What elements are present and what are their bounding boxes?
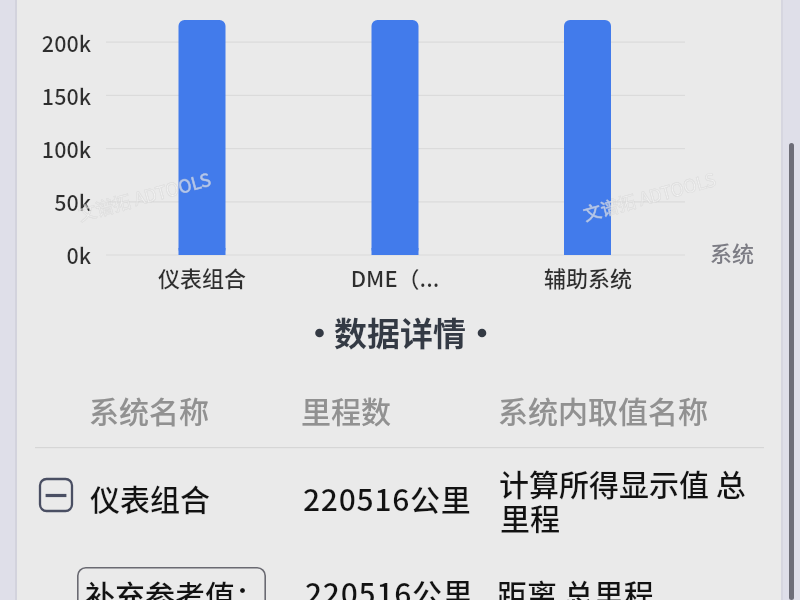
staticText: 100k	[41, 133, 91, 164]
staticText: 200k	[41, 27, 91, 58]
staticText: 距离 总里程	[497, 571, 654, 600]
staticText: 辅助系统	[488, 261, 688, 293]
staticText: 仪表组合	[102, 261, 302, 293]
staticText: 文谱拓 ADTOOLS	[580, 165, 719, 226]
staticText: 系统内取值名称	[498, 388, 708, 431]
staticText: 系统名称	[89, 388, 209, 431]
staticText: 计算所得显示值 总	[499, 461, 746, 504]
staticText: 文谱拓 ADTOOLS	[75, 165, 214, 226]
staticText: 文谱拓 ADTOOLS	[580, 165, 719, 226]
button[interactable]	[17, 448, 781, 552]
staticText: 补充参考值：	[85, 572, 265, 600]
button[interactable]	[77, 567, 266, 600]
staticText: 里程	[500, 495, 560, 538]
button[interactable]: Collapse 仪表组合	[39, 478, 73, 512]
staticText: 220516公里	[305, 570, 474, 600]
staticText: DME（...	[295, 261, 495, 293]
staticText: 里程数	[301, 388, 391, 431]
staticText: 0k	[41, 239, 91, 270]
staticText: 220516公里	[303, 476, 472, 519]
button[interactable]	[17, 552, 781, 600]
staticText: 50k	[41, 186, 91, 217]
staticText: 仪表组合	[90, 476, 210, 519]
staticText: 150k	[41, 80, 91, 111]
staticText: 文谱拓 ADTOOLS	[75, 165, 214, 226]
staticText: 数据详情	[300, 308, 500, 356]
staticText: 系统	[710, 236, 755, 268]
